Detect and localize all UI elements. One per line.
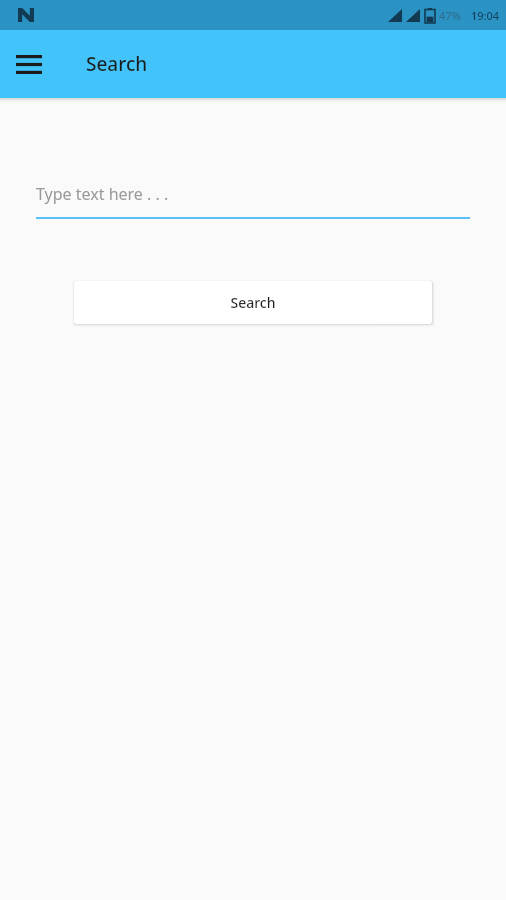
staticText: Search (230, 293, 276, 312)
staticText: Search (86, 51, 148, 77)
button[interactable]: Open navigation menu (9, 44, 49, 84)
staticText: 47% (439, 8, 461, 23)
staticText: 19:04 (471, 8, 500, 23)
staticText: Type text here . . . (36, 183, 169, 205)
button[interactable]: Search (74, 281, 432, 324)
button[interactable]: Type text here . . . (36, 183, 470, 219)
